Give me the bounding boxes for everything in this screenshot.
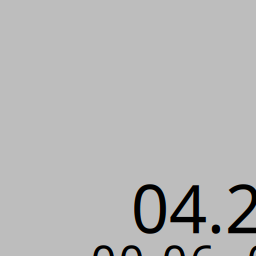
staticText: 00.06. 05 <box>91 230 256 256</box>
staticText: 04.25 <box>131 163 256 251</box>
